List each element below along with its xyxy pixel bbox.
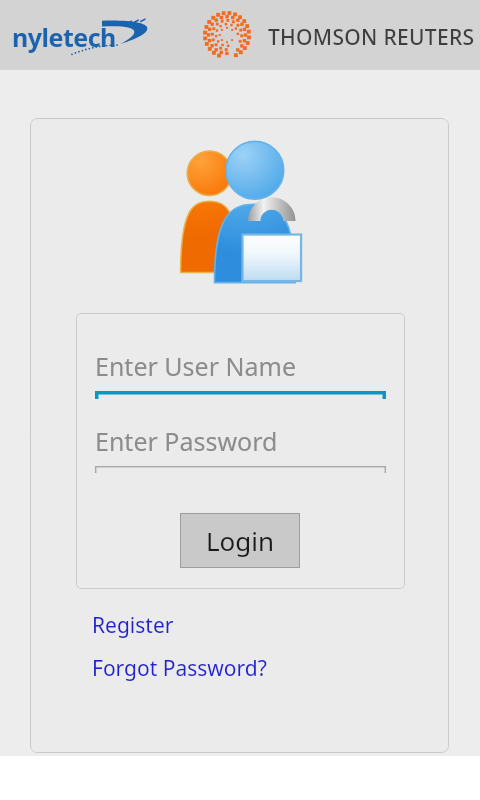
staticText: THOMSON REUTERS [268, 23, 475, 52]
staticText: Register [92, 611, 174, 640]
button[interactable]: Enter Password [95, 424, 386, 473]
button[interactable]: Login [180, 513, 300, 568]
button[interactable]: Register [90, 609, 176, 642]
staticText: Enter Password [95, 424, 278, 458]
button[interactable]: Enter User Name [95, 349, 386, 399]
other: Thomson Reuters logo [203, 11, 251, 59]
staticText: Forgot Password? [92, 654, 267, 683]
other: Nyletech logo [12, 14, 162, 56]
button[interactable]: Forgot Password? [90, 652, 269, 685]
staticText: Enter User Name [95, 349, 296, 383]
staticText: Login [206, 523, 275, 558]
staticText: nyletech [12, 20, 116, 54]
other: Secure login [160, 133, 325, 288]
